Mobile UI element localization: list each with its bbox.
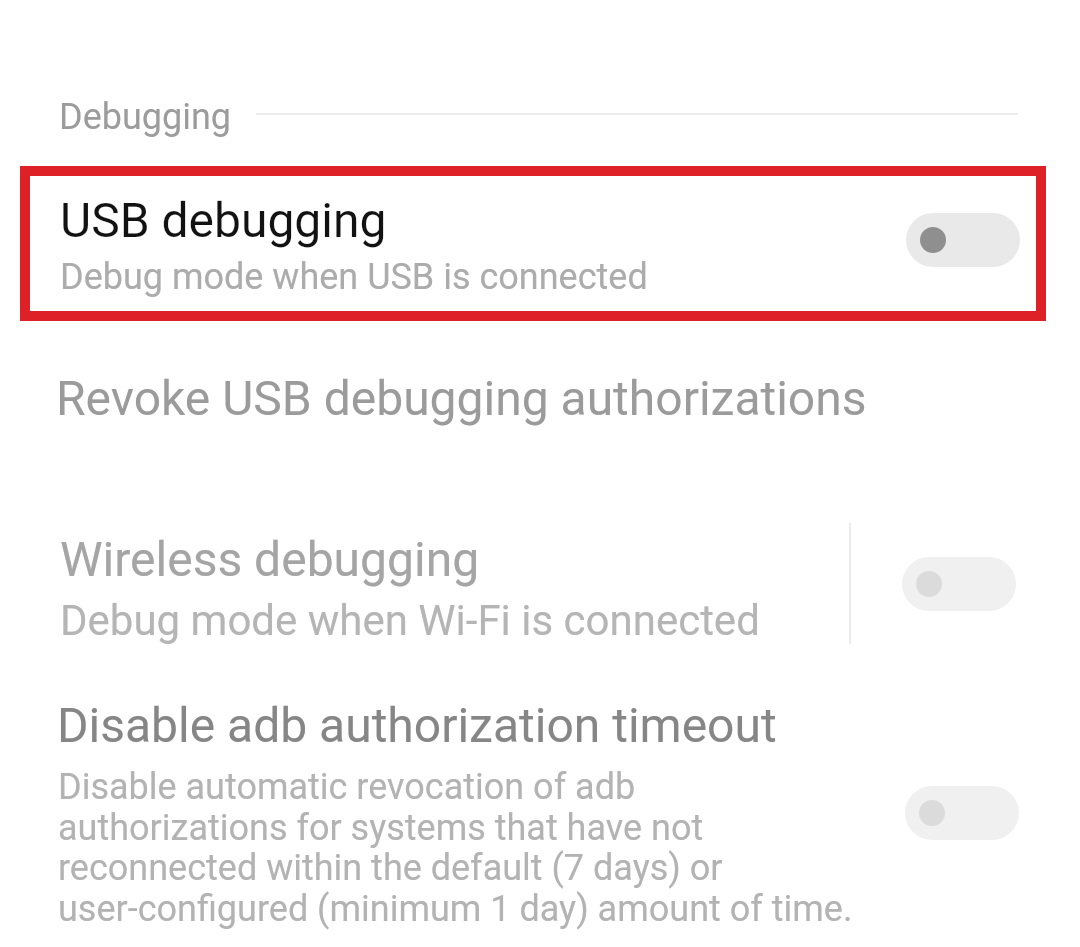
staticText: user-configured (minimum 1 day) amount o… xyxy=(58,888,853,930)
staticText: Revoke USB debugging authorizations xyxy=(56,370,867,426)
button[interactable] xyxy=(902,557,1016,611)
button[interactable] xyxy=(20,355,1060,450)
staticText: Disable adb authorization timeout xyxy=(57,697,777,753)
button[interactable] xyxy=(905,786,1019,840)
staticText: authorizations for systems that have not xyxy=(58,807,704,849)
button[interactable] xyxy=(20,515,840,650)
button[interactable] xyxy=(20,690,1060,940)
button[interactable] xyxy=(906,213,1020,267)
staticText: reconnected within the default (7 days) … xyxy=(58,847,723,889)
staticText: Debugging xyxy=(59,96,232,138)
staticText: Wireless debugging xyxy=(60,531,480,587)
staticText: USB debugging xyxy=(60,192,387,248)
button[interactable] xyxy=(20,166,1046,321)
staticText: Debug mode when USB is connected xyxy=(60,256,648,298)
staticText: Debug mode when Wi-Fi is connected xyxy=(60,596,760,645)
staticText: Disable automatic revocation of adb xyxy=(58,766,636,808)
